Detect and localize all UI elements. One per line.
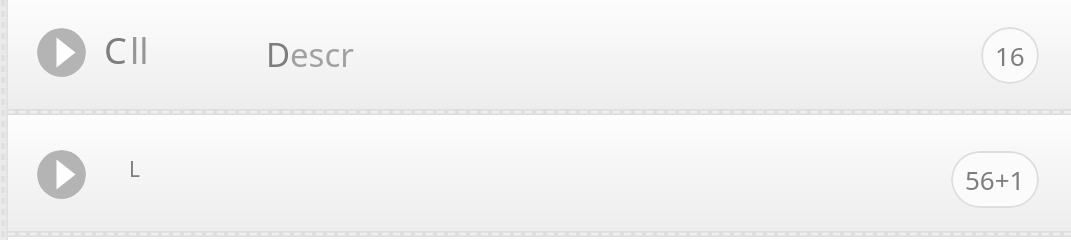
button[interactable]: Play [37,28,86,77]
staticText: C [104,26,127,75]
staticText: 56+1 [965,162,1025,197]
button[interactable]: 56+1 [951,151,1039,208]
button[interactable]: 16 [981,27,1039,84]
staticText: D [266,32,291,77]
staticText: 16 [995,38,1025,73]
staticText: ll [130,26,149,75]
button[interactable]: Play [8,0,1071,109]
button[interactable]: Play [8,115,1071,231]
button[interactable]: Play [37,150,86,199]
staticText: L [129,155,141,184]
staticText: escr [290,32,354,77]
